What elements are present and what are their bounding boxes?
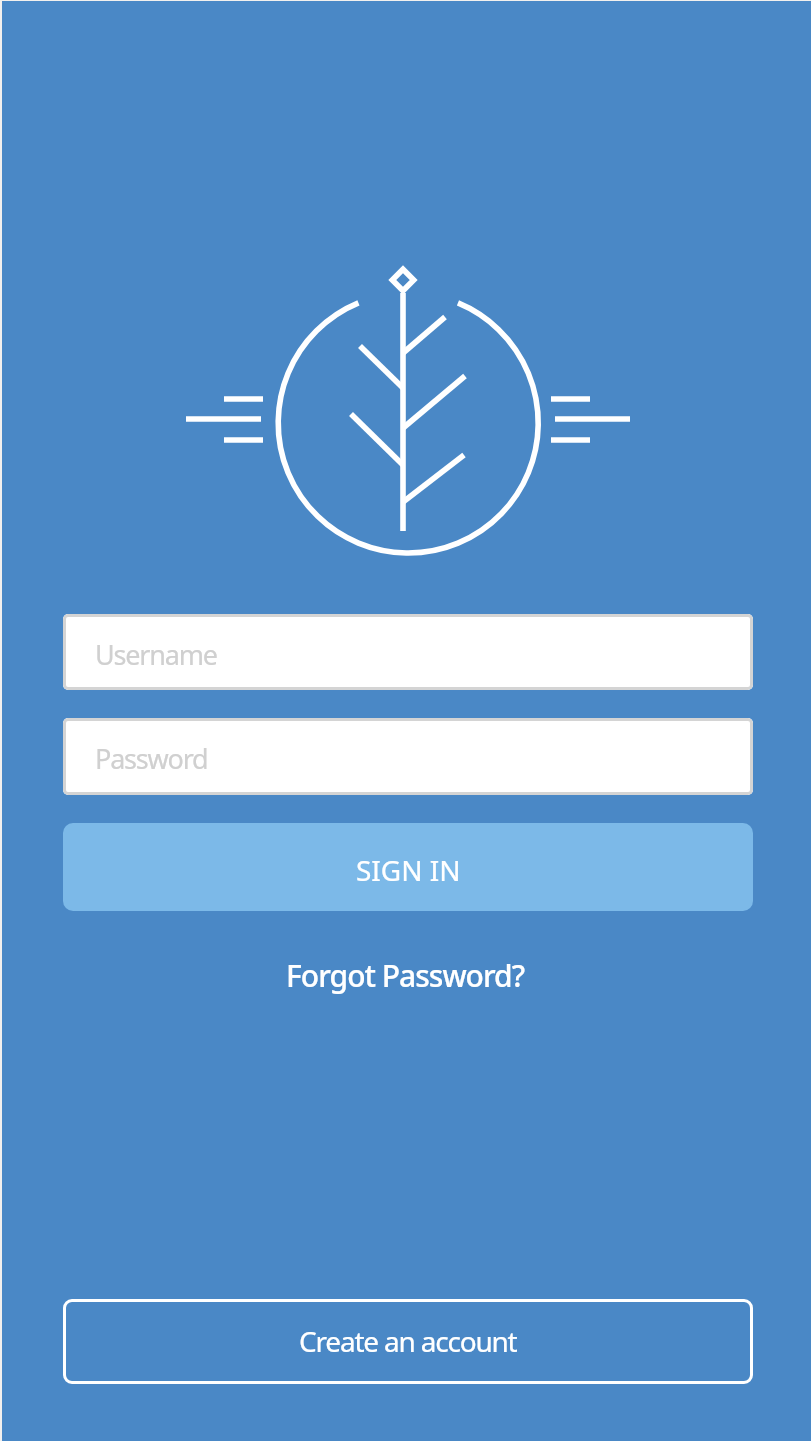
staticText: Forgot Password? (286, 955, 525, 996)
staticText: Username (95, 636, 217, 673)
staticText: Create an account (299, 1322, 517, 1360)
button[interactable]: Password (63, 718, 753, 795)
button[interactable]: SIGN IN (63, 823, 753, 911)
button[interactable]: Create an account (63, 1299, 753, 1384)
staticText: Password (95, 740, 208, 777)
staticText: SIGN IN (356, 851, 461, 889)
other: App logo (0, 250, 811, 580)
button[interactable]: Username (63, 614, 753, 690)
button[interactable]: Forgot Password? (276, 947, 535, 1004)
